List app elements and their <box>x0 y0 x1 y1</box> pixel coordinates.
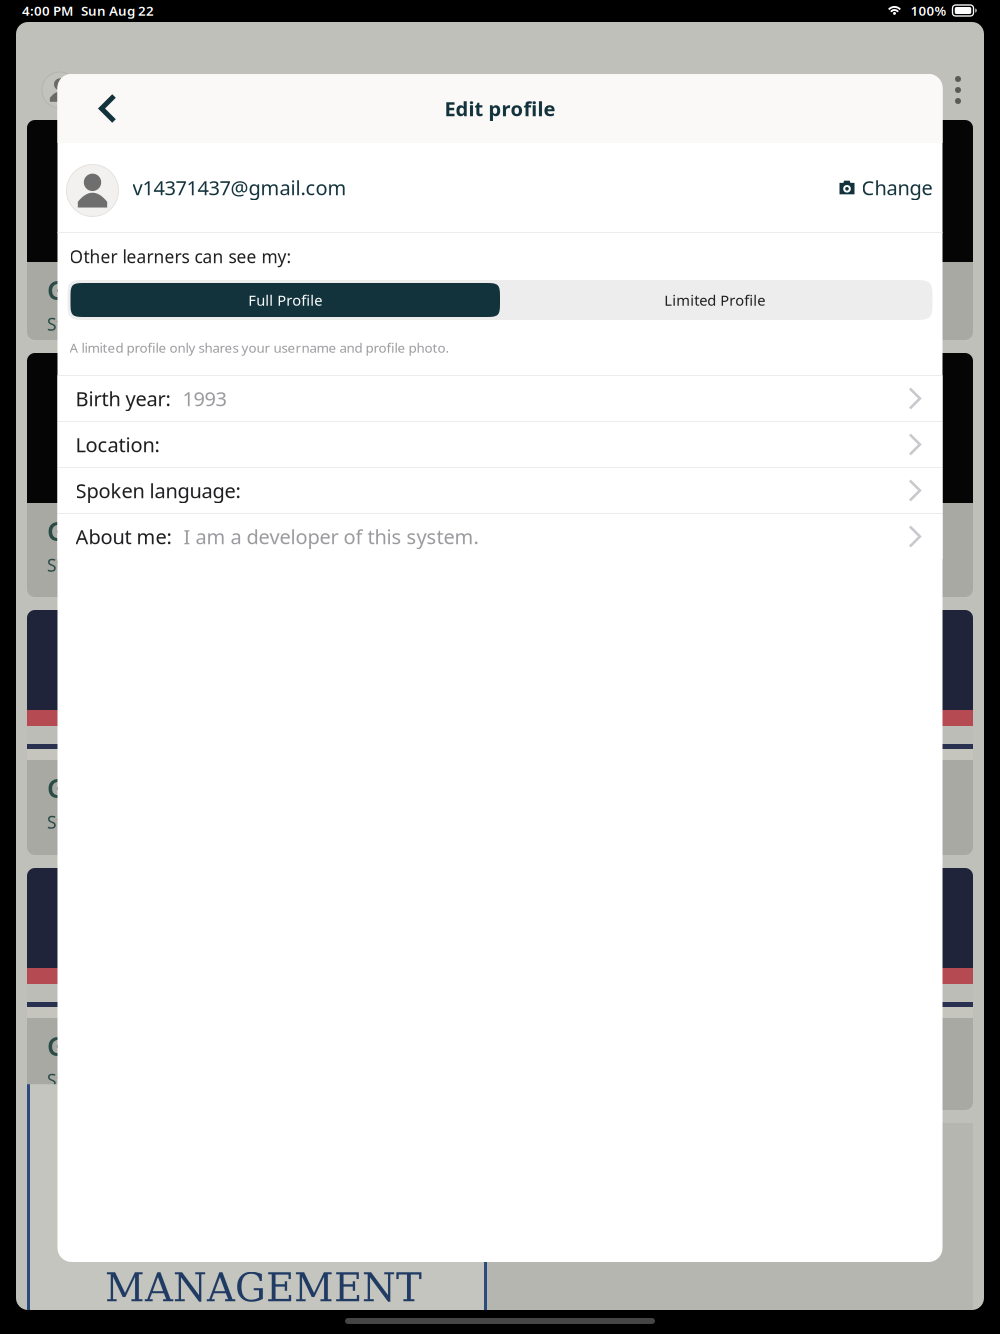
staticText: Birth year: <box>75 385 170 412</box>
button[interactable]: Back <box>57 79 119 137</box>
staticText: MANAGEMENT <box>105 1265 422 1310</box>
button[interactable]: Change <box>839 166 932 209</box>
staticText: I am a developer of this system. <box>183 523 478 550</box>
staticText: 4:00 PM <box>22 2 73 19</box>
staticText: Start your career in data analytics <box>47 312 322 335</box>
staticText: Other learners can see my: <box>69 245 291 268</box>
staticText: Sun Aug 22 <box>81 2 154 19</box>
button[interactable]: Location: <box>57 422 942 467</box>
staticText: 100% <box>910 2 946 19</box>
staticText: About me: <box>75 523 171 550</box>
staticText: Location: <box>75 431 159 458</box>
staticText: Google Data Analytics <box>47 272 335 307</box>
staticText: Google Data Analytics <box>47 513 335 548</box>
staticText: Start your career in data analytics <box>47 1068 322 1091</box>
staticText: Start your career in data analytics <box>47 553 322 576</box>
button[interactable]: Birth year: <box>57 376 942 421</box>
staticText: Spoken language: <box>75 477 240 504</box>
staticText: Full Profile <box>248 290 322 310</box>
staticText: A limited profile only shares your usern… <box>69 339 449 356</box>
staticText: Change <box>861 174 932 201</box>
staticText: Google Data Analytics <box>47 770 335 805</box>
button[interactable]: About me: <box>57 514 942 559</box>
button[interactable]: Spoken language: <box>57 468 942 513</box>
staticText: v14371437@gmail.com <box>132 174 346 201</box>
button[interactable]: Full Profile <box>70 283 500 317</box>
staticText: Edit profile <box>444 95 555 122</box>
staticText: Google Data Analytics <box>47 1028 335 1063</box>
staticText: 1993 <box>182 385 226 412</box>
staticText: Limited Profile <box>664 290 765 310</box>
staticText: Start your career in data analytics <box>47 810 322 833</box>
button[interactable]: Limited Profile <box>500 283 929 317</box>
